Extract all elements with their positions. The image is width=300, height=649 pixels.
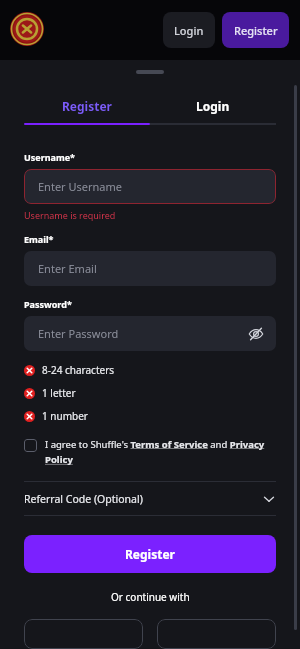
staticText: 1 letter [42, 386, 76, 400]
button[interactable]: Sign in with Google [24, 619, 143, 649]
button[interactable]: Register [24, 96, 150, 116]
staticText: Register [62, 98, 112, 114]
staticText: Register [125, 546, 175, 562]
staticText: I agree to Shuffle's Terms of Service an… [45, 438, 276, 466]
staticText: Password* [24, 298, 72, 310]
staticText: Or continue with [111, 590, 190, 604]
other: Shuffle logo [10, 12, 44, 46]
staticText: Login [196, 98, 230, 114]
button[interactable]: Register [222, 12, 289, 48]
staticText: Enter Password [38, 326, 119, 341]
button[interactable]: I agree to Shuffle's Terms of Service an… [24, 438, 276, 466]
button[interactable]: Login [163, 12, 215, 48]
staticText: Enter Username [38, 179, 123, 194]
button[interactable]: Show password [248, 326, 264, 342]
button[interactable]: Enter Email [24, 251, 276, 286]
button[interactable]: Referral Code (Optional) [24, 482, 276, 515]
button[interactable]: Register [24, 535, 276, 573]
button[interactable]: Login [150, 96, 276, 116]
staticText: Register [234, 23, 278, 38]
staticText: Login [174, 23, 204, 38]
staticText: Enter Email [38, 261, 97, 276]
button[interactable]: Enter Username [24, 169, 276, 204]
button[interactable]: Sign in with Apple [157, 619, 276, 649]
button[interactable]: Enter Password [24, 316, 276, 351]
staticText: Username is required [24, 209, 116, 221]
staticText: Email* [24, 233, 54, 245]
staticText: 8-24 characters [42, 363, 115, 377]
staticText: 1 number [42, 409, 88, 423]
staticText: Username* [24, 151, 75, 163]
staticText: Referral Code (Optional) [24, 492, 143, 506]
